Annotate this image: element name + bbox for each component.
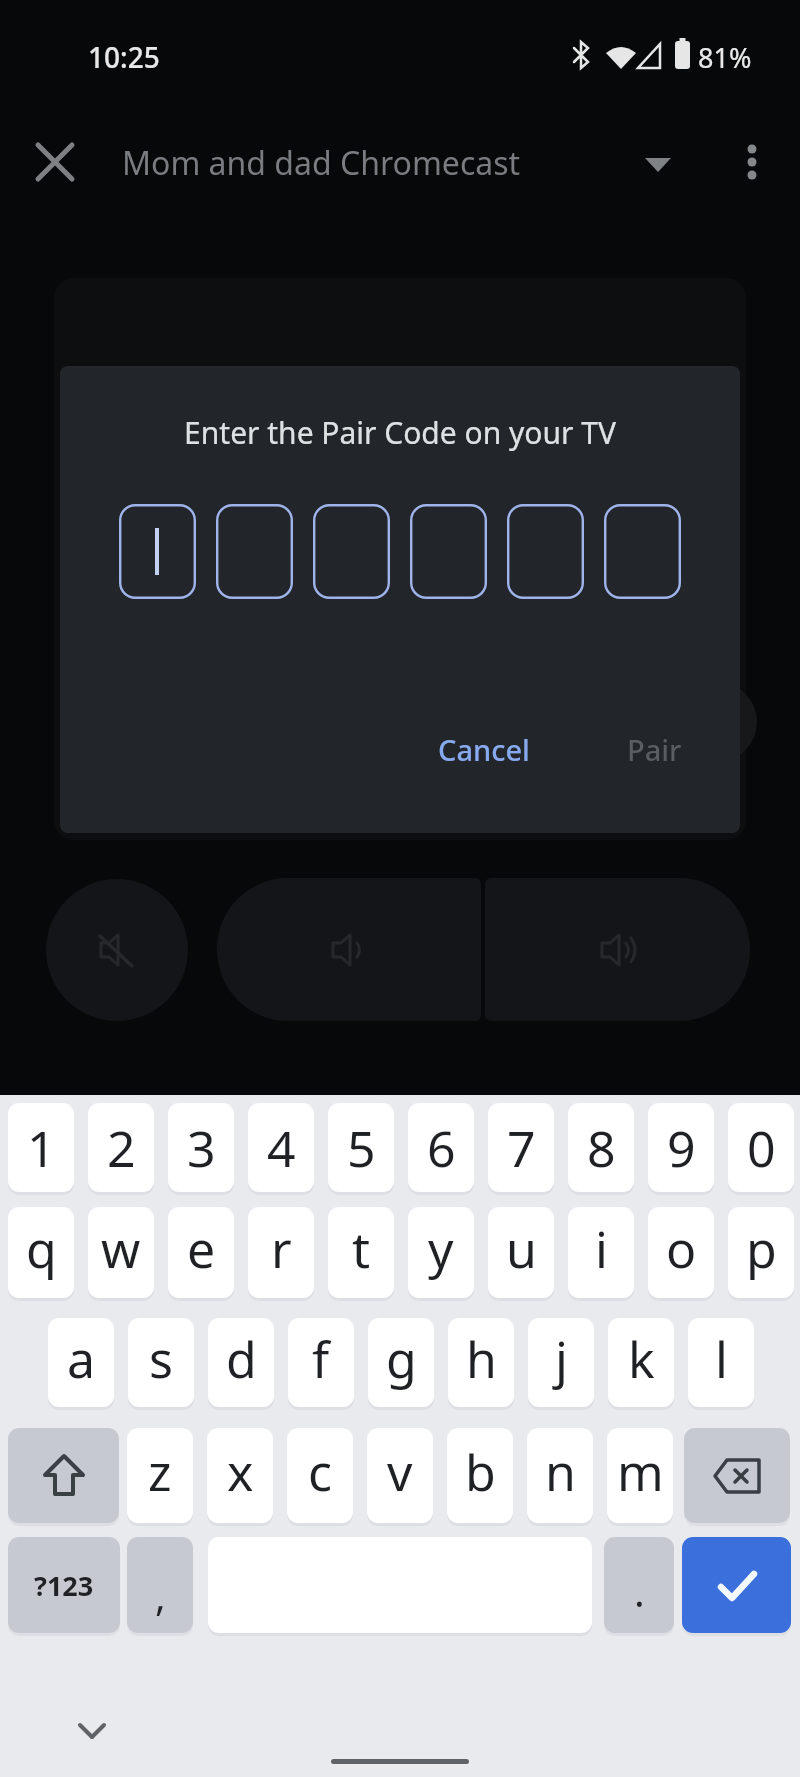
button[interactable]: t <box>328 1207 394 1298</box>
button[interactable]: , <box>127 1537 193 1633</box>
button[interactable]: q <box>8 1207 74 1298</box>
staticText: h <box>466 1325 497 1393</box>
staticText: 2 <box>107 1114 136 1182</box>
staticText: Pair <box>627 730 682 769</box>
button[interactable]: e <box>168 1207 234 1298</box>
button[interactable] <box>31 138 79 186</box>
button[interactable]: 5 <box>328 1103 394 1192</box>
button[interactable]: 0 <box>728 1103 794 1192</box>
staticText: p <box>746 1215 777 1283</box>
button[interactable]: b <box>447 1428 513 1523</box>
staticText: t <box>352 1215 371 1283</box>
button[interactable]: n <box>527 1428 593 1523</box>
button[interactable]: a <box>48 1318 114 1407</box>
staticText: m <box>617 1438 664 1506</box>
button[interactable]: x <box>207 1428 273 1523</box>
staticText: j <box>555 1325 568 1393</box>
staticText: s <box>149 1325 173 1393</box>
staticText: Enter the Pair Code on your TV <box>60 412 740 452</box>
button[interactable]: f <box>288 1318 354 1407</box>
button[interactable] <box>682 1537 791 1633</box>
button[interactable] <box>8 1428 119 1523</box>
button[interactable]: . <box>604 1537 674 1633</box>
staticText: 10:25 <box>88 38 160 76</box>
staticText: c <box>308 1438 332 1506</box>
staticText: x <box>227 1438 254 1506</box>
staticText: k <box>628 1325 655 1393</box>
button[interactable]: u <box>488 1207 554 1298</box>
button[interactable]: m <box>607 1428 673 1523</box>
button[interactable] <box>410 504 487 599</box>
button[interactable]: 8 <box>568 1103 634 1192</box>
staticText: Cancel <box>438 730 530 769</box>
staticText: a <box>67 1325 96 1393</box>
staticText: v <box>387 1438 413 1506</box>
staticText: r <box>271 1215 292 1283</box>
staticText: n <box>545 1438 576 1506</box>
button[interactable]: k <box>608 1318 674 1407</box>
button[interactable]: y <box>408 1207 474 1298</box>
button[interactable]: p <box>728 1207 794 1298</box>
button[interactable]: z <box>127 1428 193 1523</box>
button[interactable] <box>485 878 750 1021</box>
button[interactable]: g <box>368 1318 434 1407</box>
staticText: z <box>148 1438 172 1506</box>
button[interactable] <box>119 504 196 599</box>
button[interactable]: ?123 <box>8 1537 120 1633</box>
button[interactable]: l <box>688 1318 754 1407</box>
button[interactable]: c <box>287 1428 353 1523</box>
staticText: l <box>715 1325 728 1393</box>
button[interactable] <box>46 879 188 1021</box>
button[interactable]: 9 <box>648 1103 714 1192</box>
staticText: i <box>595 1215 608 1283</box>
button[interactable]: Cancel <box>408 718 560 780</box>
button[interactable]: o <box>648 1207 714 1298</box>
staticText: 8 <box>587 1114 616 1182</box>
staticText: 1 <box>27 1114 56 1182</box>
staticText: e <box>187 1215 216 1283</box>
button[interactable]: 1 <box>8 1103 74 1192</box>
button[interactable]: 2 <box>88 1103 154 1192</box>
staticText: 5 <box>347 1114 376 1182</box>
button[interactable]: 7 <box>488 1103 554 1192</box>
staticText: ?123 <box>34 1567 94 1604</box>
button[interactable] <box>684 1428 790 1523</box>
button[interactable]: r <box>248 1207 314 1298</box>
staticText: o <box>666 1215 697 1283</box>
button[interactable]: 4 <box>248 1103 314 1192</box>
button[interactable]: 6 <box>408 1103 474 1192</box>
staticText: b <box>465 1438 496 1506</box>
button[interactable] <box>216 504 293 599</box>
button[interactable] <box>313 504 390 599</box>
button[interactable]: 3 <box>168 1103 234 1192</box>
button[interactable] <box>507 504 584 599</box>
staticText: 6 <box>427 1114 456 1182</box>
button[interactable]: i <box>568 1207 634 1298</box>
button[interactable] <box>217 878 481 1021</box>
staticText: , <box>155 1568 166 1622</box>
button[interactable]: w <box>88 1207 154 1298</box>
staticText: y <box>428 1215 454 1283</box>
staticText: f <box>312 1325 330 1393</box>
staticText: w <box>101 1215 141 1283</box>
staticText: 9 <box>667 1114 696 1182</box>
button[interactable] <box>645 158 671 172</box>
staticText: . <box>634 1564 645 1618</box>
button[interactable] <box>604 504 681 599</box>
button[interactable]: s <box>128 1318 194 1407</box>
staticText: 3 <box>187 1114 216 1182</box>
button[interactable]: j <box>528 1318 594 1407</box>
staticText: q <box>26 1215 57 1283</box>
button[interactable]: Pair <box>604 718 704 780</box>
staticText: 81% <box>698 39 752 76</box>
button[interactable]: d <box>208 1318 274 1407</box>
staticText: 0 <box>747 1114 776 1182</box>
button[interactable]: v <box>367 1428 433 1523</box>
staticText: d <box>226 1325 257 1393</box>
button[interactable]: h <box>448 1318 514 1407</box>
button[interactable] <box>78 1723 106 1739</box>
staticText: 7 <box>507 1114 536 1182</box>
staticText: 4 <box>267 1114 296 1182</box>
button[interactable] <box>740 138 764 186</box>
